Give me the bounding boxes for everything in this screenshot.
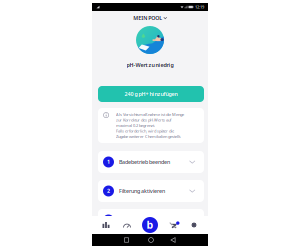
staticText: MEIN POOL [133, 14, 162, 22]
button[interactable]: Übersicht [115, 234, 137, 246]
button[interactable]: Bayrol Home [141, 216, 159, 234]
button[interactable]: Einstellungen [182, 216, 205, 234]
staticText: Zugabe weiterer Chemikalien gestellt. [116, 134, 181, 139]
staticText: pH-Wert messen [119, 216, 161, 224]
button[interactable]: Shop [161, 216, 184, 234]
button[interactable]: Startbildschirm [140, 234, 162, 246]
button[interactable]: Messwerte [115, 216, 138, 234]
staticText: 240 g pH+ hinzufügen [124, 90, 177, 98]
button[interactable]: 240 g pH+ hinzufügen [98, 86, 204, 102]
button[interactable]: 1 [98, 151, 204, 173]
staticText: Filterung aktivieren [119, 187, 165, 195]
staticText: 12:19 [195, 4, 204, 10]
staticText: maximal 0.2 begrenzt. [116, 123, 155, 128]
button[interactable]: 3 [98, 209, 204, 231]
staticText: 2 [107, 187, 110, 194]
staticText: b [146, 217, 153, 232]
staticText: zur Korrektur des pH-Werts auf [116, 117, 171, 123]
staticText: Falls erforderlich, wird später die [116, 128, 174, 134]
button[interactable]: 2 [98, 180, 204, 202]
staticText: Badebetrieb beenden [119, 158, 170, 166]
button[interactable]: MEIN POOL [92, 15, 208, 21]
staticText: Als Vorsichtsmaßnahme ist die Menge [116, 112, 184, 117]
button[interactable]: Statistik [94, 216, 117, 234]
staticText: 1 [107, 158, 110, 165]
button[interactable]: Zurück [162, 234, 184, 246]
staticText: pH-Wert zu niedrig [126, 61, 173, 69]
